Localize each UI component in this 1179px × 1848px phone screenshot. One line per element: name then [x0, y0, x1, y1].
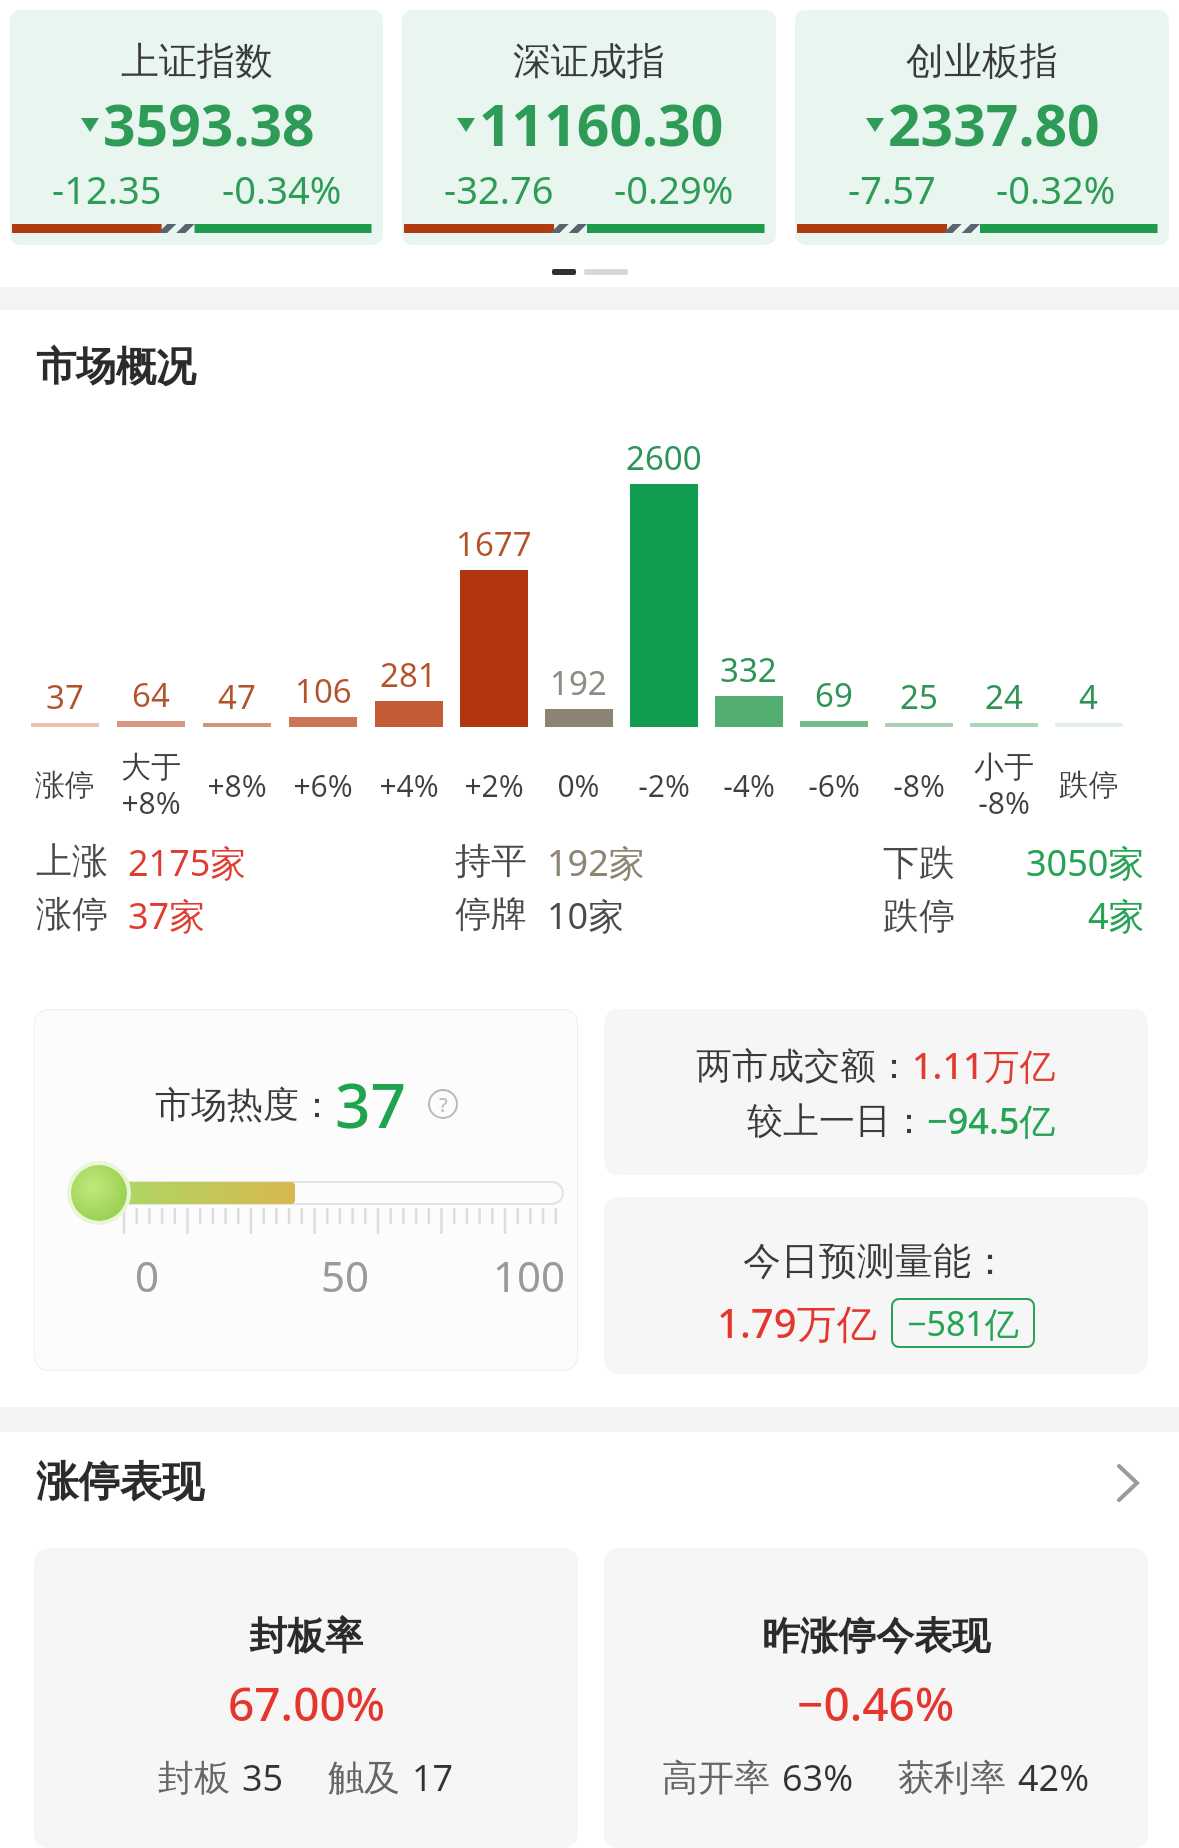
staticText: 69 [815, 672, 853, 717]
staticText: 64 [132, 672, 170, 717]
staticText: 昨涨停今表现 [762, 1612, 990, 1660]
staticText: -2% [638, 765, 690, 806]
staticText: −581亿 [907, 1300, 1019, 1346]
staticText: 市场概况 [36, 341, 196, 391]
staticText: 创业板指 [906, 37, 1058, 85]
staticText: 50 [321, 1247, 370, 1303]
staticText: 47 [218, 674, 256, 719]
staticText: 小于 -8% [974, 748, 1034, 823]
staticText: -6% [808, 765, 860, 806]
staticText: 332 [720, 647, 777, 692]
staticText: 37家 [128, 891, 206, 940]
staticText: 较上一日： [747, 1098, 927, 1143]
staticText: 25 [900, 674, 938, 719]
staticText: 高开率 [662, 1755, 770, 1800]
staticText: 35 [242, 1753, 284, 1802]
staticText: 63% [782, 1753, 854, 1802]
staticText: 获利率 [898, 1755, 1006, 1800]
staticText: -0.29% [614, 163, 734, 215]
staticText: 17 [412, 1753, 454, 1802]
staticText: 今日预测量能： [743, 1237, 1009, 1285]
staticText: 1.79万亿 [717, 1295, 877, 1350]
staticText: 10家 [547, 891, 625, 940]
staticText: -32.76 [444, 163, 554, 215]
staticText: 192 [550, 660, 607, 705]
staticText: 触及 [328, 1755, 400, 1800]
staticText: 67.00% [228, 1672, 385, 1735]
button[interactable]: 上证指数 [10, 10, 383, 245]
staticText: ? [439, 1091, 448, 1118]
staticText: 37 [335, 1062, 406, 1146]
staticText: 192家 [547, 838, 645, 887]
staticText: 11160.30 [479, 85, 724, 163]
staticText: 停牌 [455, 891, 527, 936]
staticText: 深证成指 [513, 37, 665, 85]
button[interactable]: 今日预测量能： [604, 1197, 1148, 1374]
staticText: 封板 [158, 1755, 230, 1800]
staticText: -12.35 [52, 163, 162, 215]
button[interactable]: 深证成指 [402, 10, 776, 245]
staticText: 两市成交额： [696, 1043, 912, 1088]
staticText: 跌停 [883, 893, 955, 938]
staticText: 跌停 [1059, 766, 1119, 804]
staticText: +6% [293, 765, 353, 806]
staticText: 涨停表现 [36, 1456, 204, 1509]
staticText: 1677 [456, 521, 532, 566]
staticText: 37 [46, 674, 84, 719]
staticText: +2% [464, 765, 524, 806]
staticText: 281 [380, 652, 437, 697]
button[interactable]: 创业板指 [795, 10, 1169, 245]
staticText: 大于 +8% [121, 748, 181, 823]
staticText: -8% [893, 765, 945, 806]
staticText: 涨停 [35, 766, 95, 804]
staticText: 4 [1079, 674, 1098, 719]
staticText: −94.5亿 [927, 1096, 1056, 1145]
staticText: 封板率 [249, 1612, 363, 1660]
button[interactable]: 市场热度： [34, 1009, 578, 1371]
staticText: -0.32% [996, 163, 1116, 215]
staticText: +4% [379, 765, 439, 806]
staticText: -0.34% [222, 163, 342, 215]
staticText: -7.57 [848, 163, 936, 215]
button[interactable]: 封板率 [34, 1548, 578, 1848]
staticText: −0.46% [797, 1672, 955, 1735]
staticText: 0% [557, 765, 600, 806]
staticText: 2175家 [128, 838, 247, 887]
staticText: +8% [207, 765, 267, 806]
button[interactable]: 两市成交额： [604, 1009, 1148, 1175]
staticText: 上证指数 [121, 37, 273, 85]
staticText: 100 [493, 1247, 566, 1303]
staticText: 42% [1018, 1753, 1090, 1802]
staticText: 1.11万亿 [912, 1041, 1056, 1090]
staticText: 24 [985, 674, 1023, 719]
staticText: 下跌 [883, 840, 955, 885]
staticText: 持平 [455, 838, 527, 883]
staticText: 市场热度： [155, 1082, 335, 1127]
staticText: 上涨 [36, 838, 108, 883]
staticText: 4家 [1088, 891, 1145, 940]
staticText: 3050家 [1026, 838, 1145, 887]
staticText: -4% [723, 765, 775, 806]
staticText: 涨停 [36, 891, 108, 936]
staticText: 2600 [626, 435, 702, 480]
button[interactable]: 昨涨停今表现 [604, 1548, 1148, 1848]
staticText: 106 [295, 668, 352, 713]
staticText: 3593.38 [103, 85, 315, 163]
staticText: 0 [135, 1247, 160, 1303]
staticText: 2337.80 [888, 85, 1100, 163]
